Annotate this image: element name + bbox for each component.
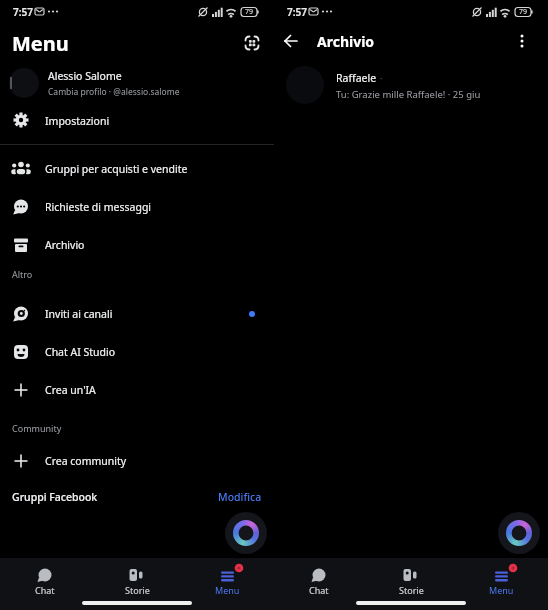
button[interactable]: Impostazioni: [0, 104, 274, 138]
staticText: ·: [377, 71, 383, 85]
button[interactable]: Chat: [20, 560, 70, 596]
button[interactable]: Crea un'IA: [0, 371, 274, 409]
staticText: Crea community: [45, 454, 127, 468]
staticText: 7:57: [287, 5, 307, 19]
staticText: Gruppi per acquisti e vendite: [45, 162, 188, 176]
staticText: Altro: [12, 268, 33, 280]
button[interactable]: [279, 29, 303, 53]
button[interactable]: Storie: [112, 560, 162, 596]
staticText: Storie: [125, 584, 150, 596]
button[interactable]: Raffaele: [274, 62, 548, 108]
button[interactable]: Menu: [476, 560, 526, 596]
button[interactable]: Menu: [202, 560, 252, 596]
staticText: Archivio: [317, 32, 375, 51]
staticText: Tu: Grazie mille Raffaele! · 25 giu: [336, 88, 481, 101]
button[interactable]: Gruppi per acquisti e vendite: [0, 150, 274, 188]
staticText: Raffaele: [336, 71, 377, 85]
staticText: 7:57: [13, 5, 33, 19]
button[interactable]: Inviti ai canali: [0, 295, 274, 333]
button[interactable]: [510, 29, 534, 53]
staticText: Menu: [489, 584, 514, 596]
staticText: Community: [12, 422, 62, 434]
staticText: Cambia profilo · @alessio.salome: [48, 86, 180, 98]
staticText: Menu: [12, 30, 69, 57]
staticText: Impostazioni: [45, 114, 110, 128]
staticText: Chat AI Studio: [45, 345, 116, 359]
staticText: Gruppi Facebook: [12, 490, 98, 504]
staticText: 79: [519, 7, 528, 17]
button[interactable]: Storie: [386, 560, 436, 596]
button[interactable]: Chat: [294, 560, 344, 596]
button[interactable]: Crea community: [0, 442, 274, 480]
staticText: Richieste di messaggi: [45, 200, 152, 214]
button[interactable]: Modifica: [230, 490, 274, 504]
staticText: Crea un'IA: [45, 383, 96, 397]
staticText: 79: [245, 7, 254, 17]
staticText: Archivio: [45, 238, 85, 252]
staticText: Chat: [309, 584, 329, 596]
button[interactable]: Archivio: [0, 226, 274, 264]
button[interactable]: Richieste di messaggi: [0, 188, 274, 226]
staticText: Inviti ai canali: [45, 307, 113, 321]
staticText: Alessio Salome: [48, 69, 122, 83]
button[interactable]: [238, 29, 266, 57]
staticText: Menu: [215, 584, 240, 596]
staticText: Chat: [35, 584, 55, 596]
button[interactable]: Chat AI Studio: [0, 333, 274, 371]
staticText: Storie: [399, 584, 424, 596]
staticText: Modifica: [218, 490, 262, 504]
button[interactable]: Alessio Salome: [0, 62, 274, 104]
